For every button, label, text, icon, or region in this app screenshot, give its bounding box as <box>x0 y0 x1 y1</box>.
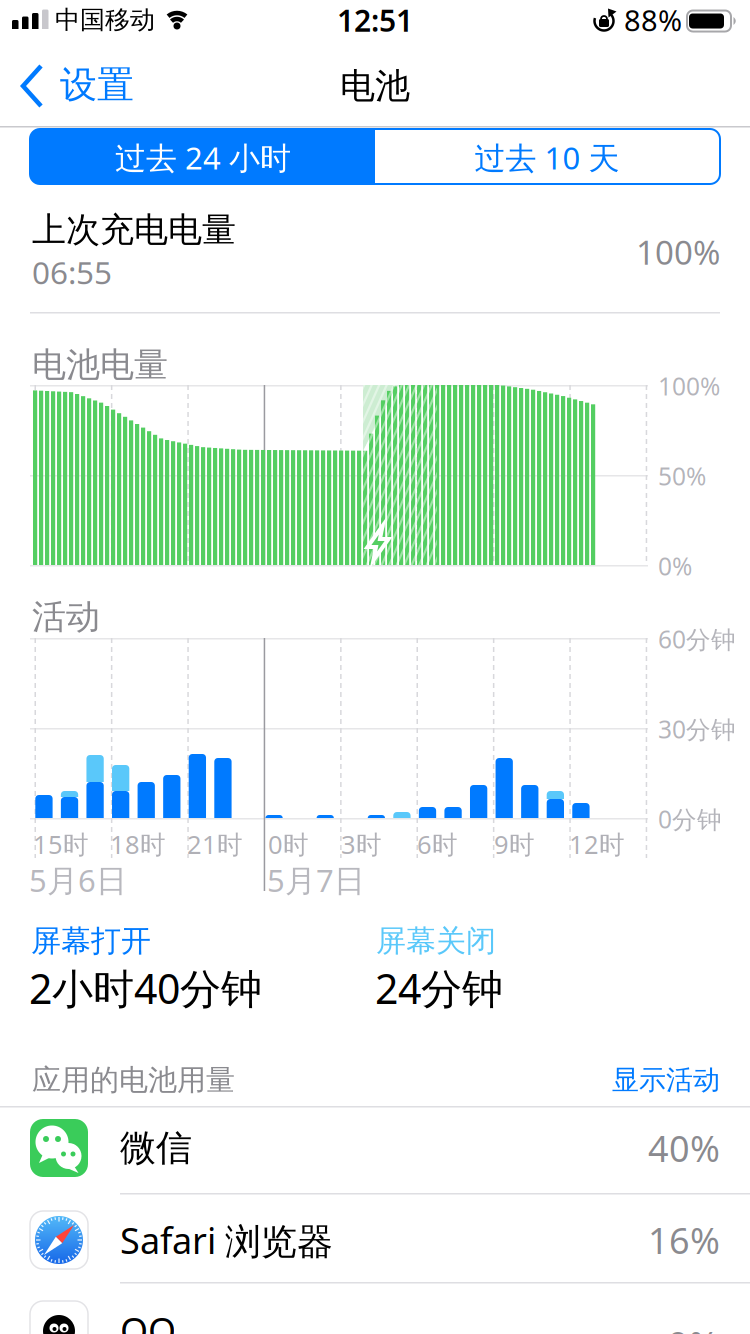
staticText: 过去 24 小时 <box>115 136 291 179</box>
staticText: 屏幕关闭 <box>376 922 496 960</box>
button[interactable]: QQ <box>0 1286 750 1334</box>
staticText: 5月6日 <box>29 859 127 901</box>
staticText: 06:55 <box>32 250 112 293</box>
staticText: 活动 <box>32 596 100 638</box>
staticText: 12:51 <box>337 0 413 40</box>
button[interactable]: 显示活动 <box>0 0 750 1334</box>
staticText: 电池 <box>340 64 410 108</box>
staticText: QQ <box>120 1305 176 1334</box>
button[interactable]: 微信 <box>0 1104 750 1192</box>
staticText: 0% <box>658 549 692 583</box>
staticText: 3时 <box>341 827 382 861</box>
staticText: 15时 <box>33 827 89 861</box>
button[interactable]: 过去 10 天 <box>0 0 750 1334</box>
staticText: 21时 <box>187 827 243 861</box>
staticText: 30分钟 <box>658 712 736 746</box>
button[interactable]: 设置 <box>0 54 140 118</box>
staticText: 0分钟 <box>658 802 722 836</box>
staticText: 100% <box>636 229 720 274</box>
staticText: 9时 <box>494 827 535 861</box>
staticText: 微信 <box>120 1125 192 1171</box>
staticText: 24分钟 <box>375 960 503 1016</box>
staticText: 2小时40分钟 <box>29 960 262 1016</box>
staticText: 0时 <box>268 827 309 861</box>
staticText: 屏幕打开 <box>31 922 151 960</box>
staticText: 60分钟 <box>658 622 736 656</box>
staticText: 设置 <box>60 62 134 108</box>
button[interactable]: 过去 24 小时 <box>0 0 750 1334</box>
staticText: 中国移动 <box>55 4 155 36</box>
staticText: 过去 10 天 <box>474 136 619 179</box>
staticText: Safari 浏览器 <box>120 1215 333 1265</box>
button[interactable]: Safari 浏览器 <box>0 1196 750 1284</box>
staticText: 显示活动 <box>612 1063 720 1097</box>
staticText: 6时 <box>417 827 458 861</box>
staticText: 50% <box>658 459 706 493</box>
staticText: 100% <box>658 369 720 403</box>
staticText: 上次充电电量 <box>32 209 236 251</box>
staticText: 应用的电池用量 <box>32 1062 235 1098</box>
staticText: 18时 <box>110 827 166 861</box>
staticText: 12时 <box>569 827 625 861</box>
staticText: 16% <box>648 1215 720 1264</box>
staticText: 5月7日 <box>267 859 365 901</box>
staticText: 88% <box>624 0 682 40</box>
staticText: 电池电量 <box>32 344 168 386</box>
staticText: 9% <box>668 1319 719 1334</box>
staticText: 40% <box>648 1123 720 1172</box>
